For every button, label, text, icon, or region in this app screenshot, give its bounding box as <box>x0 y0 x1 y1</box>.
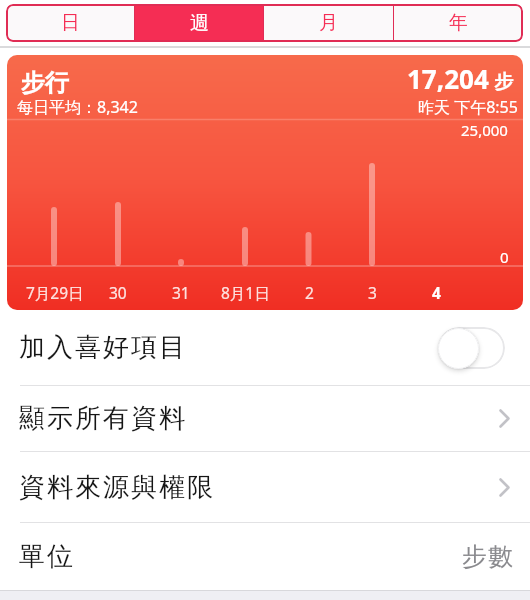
button[interactable]: 顯示所有資料 <box>0 386 530 451</box>
button[interactable] <box>438 327 505 369</box>
staticText: 加入喜好項目 <box>18 331 186 364</box>
staticText: 週 <box>190 11 209 35</box>
staticText: 步 <box>489 68 513 94</box>
staticText: 每日平均：8,342 <box>17 96 138 118</box>
button[interactable]: 單位 <box>0 523 530 590</box>
staticText: 8月1日 <box>221 282 270 303</box>
staticText: 2 <box>305 282 314 303</box>
button[interactable]: 加入喜好項目 <box>0 310 530 385</box>
staticText: 0 <box>500 247 509 267</box>
staticText: 31 <box>172 282 190 303</box>
staticText: 25,000 <box>461 120 508 140</box>
button[interactable]: 日 <box>6 4 134 42</box>
staticText: 資料來源與權限 <box>18 471 214 504</box>
staticText: 4 <box>432 282 441 303</box>
button[interactable]: 週 <box>135 4 263 42</box>
staticText: 單位 <box>18 540 74 573</box>
staticText: 年 <box>449 11 468 35</box>
staticText: 步行 <box>21 68 69 98</box>
staticText: 7月29日 <box>26 282 84 303</box>
staticText: 月 <box>319 11 338 35</box>
button[interactable]: 年 <box>394 4 523 42</box>
staticText: 30 <box>109 282 127 303</box>
staticText: 顯示所有資料 <box>18 402 186 435</box>
button[interactable]: 步行 <box>7 55 523 310</box>
staticText: 日 <box>61 11 80 35</box>
staticText: 3 <box>368 282 377 303</box>
staticText: 昨天 下午8:55 <box>418 96 518 118</box>
button[interactable]: 資料來源與權限 <box>0 452 530 522</box>
button[interactable]: 月 <box>264 4 393 42</box>
staticText: 17,204 <box>407 61 489 96</box>
staticText: 步數 <box>461 541 514 572</box>
